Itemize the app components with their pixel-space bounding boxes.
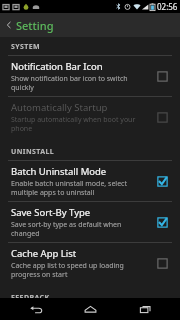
staticText: Cache app list to speed up loading progr…: [11, 261, 146, 279]
button[interactable]: Unchecked: Notification Bar Icon: [152, 66, 172, 86]
staticText: Automatically Startup: [11, 101, 108, 114]
staticText: Notification Bar Icon: [11, 60, 103, 73]
staticText: FEEDBACK: [11, 293, 50, 298]
staticText: Startup automatically when boot your pho…: [11, 115, 146, 133]
other: Back: [4, 20, 14, 30]
button[interactable]: Batch Uninstall Mode: [0, 161, 180, 201]
staticText: Enable batch uninstall mode, select mult…: [11, 179, 146, 197]
button[interactable]: Checked: Batch Uninstall Mode: [152, 171, 172, 191]
button[interactable]: Home: [70, 298, 110, 320]
button[interactable]: Recent apps: [125, 298, 165, 320]
button[interactable]: Cache App List: [0, 243, 180, 283]
staticText: SYSTEM: [11, 42, 41, 52]
button[interactable]: Back: [0, 13, 180, 37]
button[interactable]: Checked: Save Sort-By Type: [152, 212, 172, 232]
staticText: Setting: [16, 18, 54, 33]
button[interactable]: Unchecked: Automatically Startup: [152, 107, 172, 127]
staticText: Batch Uninstall Mode: [11, 165, 107, 178]
button[interactable]: Back: [15, 298, 55, 320]
button[interactable]: Automatically Startup: [0, 97, 180, 137]
staticText: UNINSTALL: [11, 147, 55, 157]
staticText: Save sort-by type as default when change…: [11, 220, 146, 238]
staticText: Save Sort-By Type: [11, 206, 91, 219]
button[interactable]: Notification Bar Icon: [0, 56, 180, 96]
staticText: Show notification bar icon to switch qui…: [11, 74, 146, 92]
button[interactable]: Unchecked: Cache App List: [152, 253, 172, 273]
staticText: Cache App List: [11, 247, 77, 260]
button[interactable]: Save Sort-By Type: [0, 202, 180, 242]
staticText: 02:56: [157, 1, 178, 12]
